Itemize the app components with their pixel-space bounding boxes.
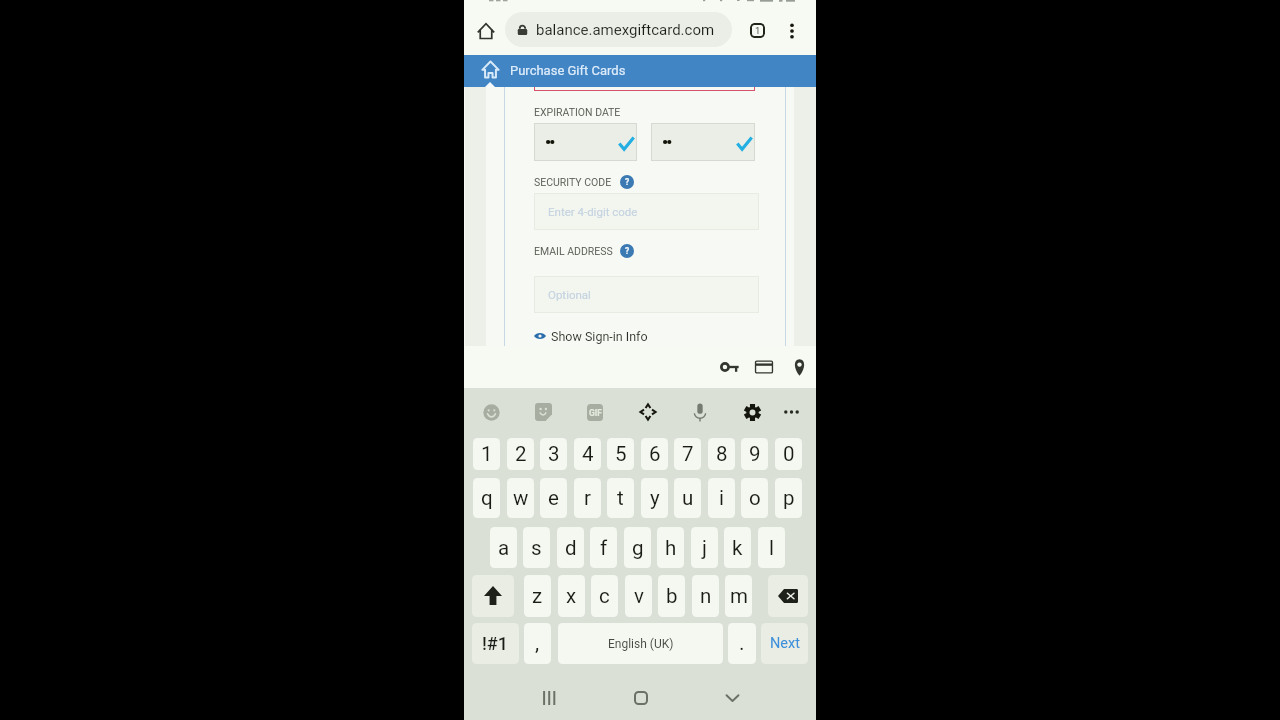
button[interactable]: Addresses — [787, 355, 811, 379]
button[interactable]: g — [624, 527, 651, 568]
staticText: 6 — [649, 442, 661, 466]
button[interactable]: 9 — [741, 438, 768, 470]
button[interactable]: a — [490, 527, 517, 568]
button[interactable]: Payment methods — [752, 355, 776, 379]
staticText: g — [632, 536, 644, 560]
button[interactable]: w — [507, 478, 534, 518]
button[interactable]: 3 — [540, 438, 567, 470]
button[interactable]: !#1 — [472, 623, 519, 664]
staticText: r — [584, 486, 591, 510]
staticText: balance.amexgiftcard.com — [536, 21, 715, 39]
button[interactable]: q — [473, 478, 500, 518]
button[interactable]: t — [607, 478, 634, 518]
staticText: m — [730, 584, 748, 608]
button[interactable]: balance.amexgiftcard.com — [505, 12, 732, 47]
staticText: p — [783, 486, 795, 510]
staticText: SECURITY CODE — [534, 176, 612, 188]
button[interactable]: f — [590, 527, 617, 568]
button[interactable]: x — [558, 575, 585, 617]
staticText: 1 — [481, 442, 493, 466]
button[interactable]: b — [658, 575, 685, 617]
staticText: e — [548, 486, 559, 510]
button[interactable]: Site home — [478, 57, 502, 81]
button[interactable]: 7 — [674, 438, 701, 470]
staticText: 5 — [615, 442, 627, 466]
button[interactable] — [534, 123, 637, 161]
button[interactable]: y — [641, 478, 668, 518]
button[interactable]: Recents — [537, 686, 561, 710]
button[interactable]: 5 — [607, 438, 634, 470]
button[interactable]: Help — [620, 244, 634, 258]
button[interactable]: Show Sign-in Info — [533, 328, 643, 344]
button[interactable]: 0 — [775, 438, 802, 470]
button[interactable]: Passwords — [718, 355, 742, 379]
button[interactable]: Stickers — [531, 400, 555, 424]
staticText: w — [513, 486, 529, 510]
button[interactable]: Move cursor — [636, 400, 660, 424]
button[interactable]: m — [725, 575, 752, 617]
staticText: l — [769, 536, 774, 560]
staticText: Show Sign-in Info — [551, 329, 648, 344]
button[interactable]: Enter 4-digit code — [534, 193, 759, 230]
button[interactable]: Hide keyboard — [720, 686, 744, 710]
staticText: z — [532, 584, 543, 608]
button[interactable]: Tabs — [746, 19, 769, 42]
button[interactable]: 2 — [507, 438, 534, 470]
button[interactable]: Voice input — [688, 400, 712, 424]
staticText: Optional — [548, 288, 591, 301]
button[interactable]: Optional — [534, 276, 759, 313]
button[interactable]: 6 — [641, 438, 668, 470]
button[interactable]: p — [775, 478, 802, 518]
staticText: y — [650, 486, 660, 510]
button[interactable]: k — [724, 527, 751, 568]
button[interactable]: c — [591, 575, 618, 617]
button[interactable]: n — [692, 575, 719, 617]
button[interactable]: Help — [620, 175, 634, 189]
button[interactable]: i — [708, 478, 735, 518]
button[interactable]: Shift — [472, 575, 514, 617]
staticText: GIF — [589, 408, 602, 418]
staticText: 7 — [682, 442, 694, 466]
button[interactable]: 8 — [708, 438, 735, 470]
button[interactable]: More — [779, 400, 803, 424]
button[interactable]: Settings — [740, 400, 764, 424]
staticText: x — [566, 584, 577, 608]
button[interactable]: , — [524, 623, 551, 664]
staticText: j — [702, 536, 707, 560]
staticText: Next — [770, 635, 800, 652]
staticText: q — [481, 486, 493, 510]
button[interactable]: 1 — [473, 438, 500, 470]
button[interactable]: u — [674, 478, 701, 518]
button[interactable]: r — [574, 478, 601, 518]
button[interactable] — [651, 123, 755, 161]
staticText: 1 — [755, 25, 761, 36]
button[interactable]: z — [524, 575, 551, 617]
button[interactable]: English (UK) — [558, 623, 723, 664]
staticText: u — [682, 486, 694, 510]
staticText: Enter 4-digit code — [548, 205, 638, 218]
button[interactable]: o — [741, 478, 768, 518]
button[interactable]: More options — [780, 19, 803, 42]
staticText: 8 — [716, 442, 728, 466]
staticText: ? — [625, 177, 630, 187]
button[interactable]: e — [540, 478, 567, 518]
button[interactable]: Home — [473, 18, 498, 43]
button[interactable]: l — [758, 527, 785, 568]
button[interactable]: . — [728, 623, 756, 664]
staticText: English (UK) — [608, 637, 674, 651]
button[interactable]: s — [523, 527, 550, 568]
button[interactable]: h — [657, 527, 684, 568]
staticText: n — [700, 584, 712, 608]
staticText: ? — [625, 246, 630, 256]
staticText: d — [565, 536, 577, 560]
button[interactable]: j — [691, 527, 718, 568]
button[interactable]: Backspace — [768, 575, 808, 617]
button[interactable]: Next — [761, 623, 808, 664]
button[interactable]: v — [625, 575, 652, 617]
button[interactable]: d — [557, 527, 584, 568]
button[interactable]: 4 — [574, 438, 601, 470]
button[interactable]: GIF — [583, 400, 607, 424]
button[interactable]: Home — [629, 686, 653, 710]
staticText: t — [617, 486, 624, 510]
button[interactable]: Emoji — [479, 400, 503, 424]
